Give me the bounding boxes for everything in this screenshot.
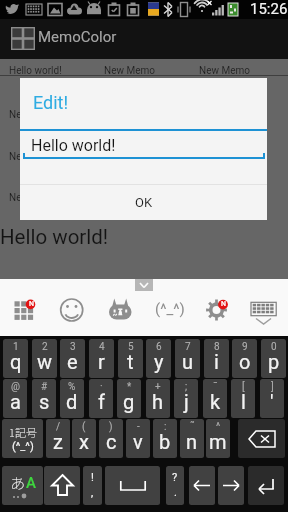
staticText: y <box>154 350 164 373</box>
button[interactable]: 9 <box>232 339 257 378</box>
staticText: 6 <box>156 341 162 353</box>
staticText: f <box>98 390 105 413</box>
button[interactable]: ˜ <box>180 419 204 458</box>
button[interactable]: Shift <box>44 466 80 505</box>
button[interactable]: Smiley <box>57 293 87 325</box>
staticText: i <box>214 350 219 373</box>
staticText: Edit! <box>33 92 69 113</box>
staticText: ! <box>91 471 94 484</box>
button[interactable]: あ <box>2 466 43 505</box>
staticText: 8 <box>214 341 220 353</box>
button[interactable]: @ <box>3 379 27 418</box>
button[interactable]: ¯ <box>203 379 227 418</box>
button[interactable]: # <box>32 379 56 418</box>
button[interactable]: ^ <box>206 419 230 458</box>
staticText: h <box>152 390 164 413</box>
staticText: / <box>56 421 61 433</box>
button[interactable]: ? <box>166 466 184 505</box>
button[interactable]: % <box>60 379 84 418</box>
staticText: o <box>239 350 251 373</box>
staticText: . <box>174 486 177 499</box>
staticText: q <box>10 350 22 373</box>
staticText: A <box>26 474 36 492</box>
staticText: 15:26 <box>250 0 288 18</box>
button[interactable]: Backspace <box>238 419 285 458</box>
staticText: j <box>184 390 189 413</box>
button[interactable]: 1 <box>3 339 28 378</box>
staticText: : <box>164 421 167 433</box>
staticText: 4 <box>99 341 105 353</box>
staticText: ' <box>270 390 274 413</box>
button[interactable]: Right <box>218 466 244 505</box>
button[interactable]: MemoColor <box>0 19 288 59</box>
staticText: ? <box>172 471 178 484</box>
button[interactable]: ] <box>260 379 284 418</box>
staticText: ] <box>271 381 274 393</box>
button[interactable]: Enter <box>248 466 284 505</box>
button[interactable]: : <box>153 419 177 458</box>
button[interactable]: 0 <box>261 339 286 378</box>
button[interactable]: Kaomoji <box>152 293 188 325</box>
staticText: 2 <box>42 341 48 353</box>
button[interactable]: 1記号 <box>2 419 43 458</box>
button[interactable]: / <box>46 419 70 458</box>
staticText: w <box>37 350 53 373</box>
staticText: ˜ <box>190 421 195 433</box>
button[interactable]: 5 <box>118 339 143 378</box>
button[interactable]: ) <box>99 419 123 458</box>
button[interactable]: 4 <box>89 339 114 378</box>
button[interactable]: * <box>117 379 141 418</box>
staticText: - <box>137 421 140 433</box>
button[interactable]: Space <box>105 466 160 505</box>
button[interactable]: ; <box>174 379 198 418</box>
button[interactable]: 6 <box>146 339 171 378</box>
button[interactable]: OK <box>20 185 267 220</box>
button[interactable]: 8 <box>204 339 229 378</box>
staticText: MemoColor <box>38 28 117 46</box>
staticText: 9 <box>242 341 248 353</box>
staticText: 1記号 <box>9 424 37 440</box>
staticText: New Memo <box>199 65 250 77</box>
staticText: (^_^) <box>12 440 34 453</box>
button[interactable]: Keyboard <box>246 293 280 325</box>
staticText: z <box>53 430 63 453</box>
staticText: @ <box>11 381 20 393</box>
staticText: N <box>221 300 226 308</box>
button[interactable]: · <box>89 379 113 418</box>
button[interactable]: - <box>126 419 150 458</box>
staticText: ) <box>109 421 113 433</box>
staticText: 1 <box>13 341 19 353</box>
staticText: Hello world! <box>0 225 109 249</box>
staticText: t <box>127 350 134 373</box>
button[interactable]: Hide keyboard <box>135 279 153 291</box>
staticText: n <box>186 430 198 453</box>
button[interactable]: 7 <box>175 339 200 378</box>
staticText: k <box>210 390 221 413</box>
staticText: b <box>159 430 171 453</box>
button[interactable]: + <box>146 379 170 418</box>
button[interactable]: Emoji grid <box>8 293 38 325</box>
button[interactable]: Settings <box>200 293 230 325</box>
staticText: New Memo <box>104 65 155 77</box>
button[interactable]: Left <box>189 466 215 505</box>
button[interactable]: Cat emoji <box>106 293 136 325</box>
button[interactable]: ( <box>72 419 96 458</box>
staticText: v <box>133 430 143 453</box>
staticText: ; <box>185 381 188 393</box>
staticText: c <box>106 430 117 453</box>
staticText: 5 <box>128 341 134 353</box>
staticText: + <box>155 381 161 393</box>
button[interactable]: ! <box>83 466 102 505</box>
staticText: ( <box>82 421 86 433</box>
staticText: New Memo <box>9 192 60 204</box>
button[interactable]: 3 <box>60 339 85 378</box>
staticText: [ <box>242 381 245 393</box>
staticText: N <box>29 300 34 308</box>
staticText: u <box>182 350 194 373</box>
staticText: x <box>79 430 89 453</box>
staticText: 3 <box>70 341 76 353</box>
staticText: * <box>127 381 132 393</box>
staticText: あ <box>10 472 26 494</box>
button[interactable]: [ <box>231 379 255 418</box>
button[interactable]: 2 <box>32 339 57 378</box>
